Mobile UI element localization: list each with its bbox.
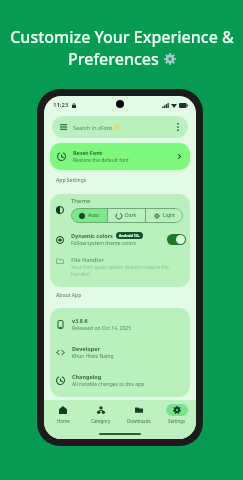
button[interactable]: Dark (108, 208, 145, 223)
button[interactable]: Changelog (50, 366, 190, 394)
staticText: Android 12+ (119, 233, 140, 238)
button[interactable]: v3.8.6 (50, 310, 190, 338)
staticText: File Handler (71, 256, 104, 263)
staticText: 11:23 (53, 101, 69, 109)
staticText: Theme (71, 197, 91, 205)
staticText: Reset Font (73, 149, 103, 156)
button[interactable]: Search in zFont (52, 116, 188, 138)
button[interactable]: Downloads (120, 400, 158, 428)
staticText: Released on Oct 14, 2025 (72, 325, 132, 332)
staticText: Downloads (127, 418, 151, 424)
staticText: All notable changes to this app (72, 381, 145, 388)
staticText: Your font apply option doesn't require f… (71, 264, 180, 277)
button[interactable]: Reset Font (50, 143, 190, 170)
staticText: Settings (168, 418, 186, 424)
staticText: Light (163, 212, 175, 219)
button[interactable]: File Handler (50, 256, 190, 277)
staticText: Khun Htetz Naing (72, 353, 114, 360)
staticText: Preferences (68, 48, 159, 70)
button[interactable]: Auto (71, 208, 107, 223)
button[interactable]: Settings (158, 400, 196, 428)
staticText: Developer (72, 345, 100, 352)
button[interactable]: Home (44, 400, 82, 428)
button[interactable]: Light (146, 208, 183, 223)
staticText: Search in zFont (73, 124, 113, 131)
staticText: Customize Your Experience & (10, 26, 234, 48)
staticText: Dynamic colors (71, 232, 113, 239)
staticText: About App (56, 292, 82, 299)
staticText: Auto (88, 212, 100, 219)
staticText: App Settings (56, 177, 87, 184)
staticText: Category (91, 418, 111, 424)
staticText: v3.8.6 (72, 317, 88, 324)
button[interactable]: Developer (50, 338, 190, 366)
button[interactable]: Dynamic colors toggle (167, 234, 186, 245)
staticText: Dark (125, 212, 137, 219)
staticText: Home (57, 418, 70, 424)
button[interactable]: Category (82, 400, 120, 428)
button[interactable]: More options (173, 120, 182, 134)
staticText: Follow system theme colors (71, 240, 137, 247)
staticText: Changelog (72, 373, 102, 380)
button[interactable]: Dynamic colors (50, 232, 190, 247)
staticText: Restore the default font (73, 157, 129, 164)
